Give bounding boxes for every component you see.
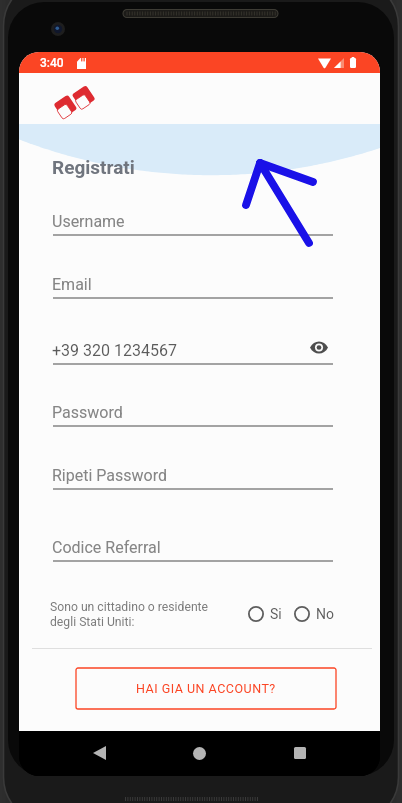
- button[interactable]: Show password: [310, 341, 328, 354]
- button[interactable]: Email: [53, 265, 333, 299]
- staticText: HAI GIA UN ACCOUNT?: [136, 681, 276, 696]
- button[interactable]: Home: [187, 741, 211, 765]
- button[interactable]: +39 320 1234567: [53, 331, 333, 365]
- staticText: +39 320 1234567: [52, 341, 177, 360]
- staticText: Sono un cittadino o residente degli Stat…: [50, 600, 209, 629]
- button[interactable]: Si: [248, 606, 282, 622]
- button[interactable]: HAI GIA UN ACCOUNT?: [76, 668, 336, 709]
- staticText: 3:40: [40, 56, 64, 70]
- staticText: Registrati: [52, 156, 135, 178]
- button[interactable]: Username: [53, 202, 333, 236]
- staticText: Ripeti Password: [52, 466, 167, 485]
- button[interactable]: Ripeti Password: [53, 456, 333, 490]
- button[interactable]: Password: [53, 393, 333, 427]
- staticText: Si: [270, 606, 282, 622]
- button[interactable]: Recents: [288, 741, 312, 765]
- button[interactable]: Back: [87, 741, 111, 765]
- staticText: Password: [52, 403, 123, 422]
- staticText: Username: [52, 212, 125, 231]
- staticText: No: [316, 606, 334, 622]
- staticText: Email: [52, 275, 92, 294]
- button[interactable]: Codice Referral: [53, 528, 333, 562]
- button[interactable]: No: [294, 606, 334, 622]
- staticText: Codice Referral: [52, 538, 161, 557]
